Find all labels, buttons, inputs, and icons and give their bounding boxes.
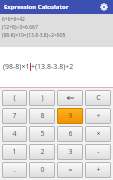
button[interactable]: - [85, 144, 111, 160]
button[interactable]: = [57, 162, 83, 178]
button[interactable]: × [85, 126, 111, 142]
button[interactable]: 7 [2, 108, 27, 124]
staticText: ) [41, 93, 44, 103]
staticText: 9 [68, 111, 73, 121]
staticText: 4 [12, 129, 17, 139]
staticText: = [68, 165, 73, 175]
staticText: (12+8)÷3=6.667 [2, 24, 38, 31]
button[interactable]: 1 [2, 144, 27, 160]
button[interactable]: C [85, 90, 111, 106]
staticText: × [96, 129, 101, 139]
button[interactable]: . [2, 162, 27, 178]
staticText: . [14, 165, 16, 175]
staticText: +(13.8-3.8)÷2 [31, 62, 74, 72]
button[interactable]: 6 [57, 126, 83, 142]
staticText: C [96, 93, 101, 103]
staticText: 3 [68, 147, 73, 157]
button[interactable]: 9 [57, 108, 83, 124]
staticText: Expression Calculator [4, 3, 69, 11]
button[interactable]: 5 [29, 126, 55, 142]
staticText: (98-8)×10=(13.8-3.8)÷2=905 [2, 32, 66, 39]
staticText: (98-8)×1 [3, 62, 30, 72]
staticText: 7 [12, 111, 17, 121]
button[interactable] [57, 90, 83, 106]
button[interactable]: 0 [29, 162, 55, 178]
button[interactable]: (98-8)×1 [0, 47, 113, 87]
staticText: - [97, 147, 100, 157]
button[interactable]: 8 [29, 108, 55, 124]
staticText: 6 [68, 129, 73, 139]
staticText: ÷ [96, 111, 101, 121]
staticText: 2 [40, 147, 45, 157]
staticText: 0 [40, 165, 45, 175]
button[interactable]: Settings [98, 1, 110, 13]
staticText: 5 [40, 129, 45, 139]
button[interactable]: ÷ [85, 108, 111, 124]
button[interactable]: + [85, 162, 111, 178]
button[interactable]: 4 [2, 126, 27, 142]
button[interactable]: 3 [57, 144, 83, 160]
button[interactable]: ) [29, 90, 55, 106]
staticText: + [96, 165, 101, 175]
button[interactable]: ( [2, 90, 27, 106]
staticText: 6+6+6=42 [2, 16, 25, 23]
staticText: 1 [12, 147, 17, 157]
button[interactable]: 2 [29, 144, 55, 160]
staticText: ( [13, 93, 16, 103]
staticText: 8 [40, 111, 45, 121]
